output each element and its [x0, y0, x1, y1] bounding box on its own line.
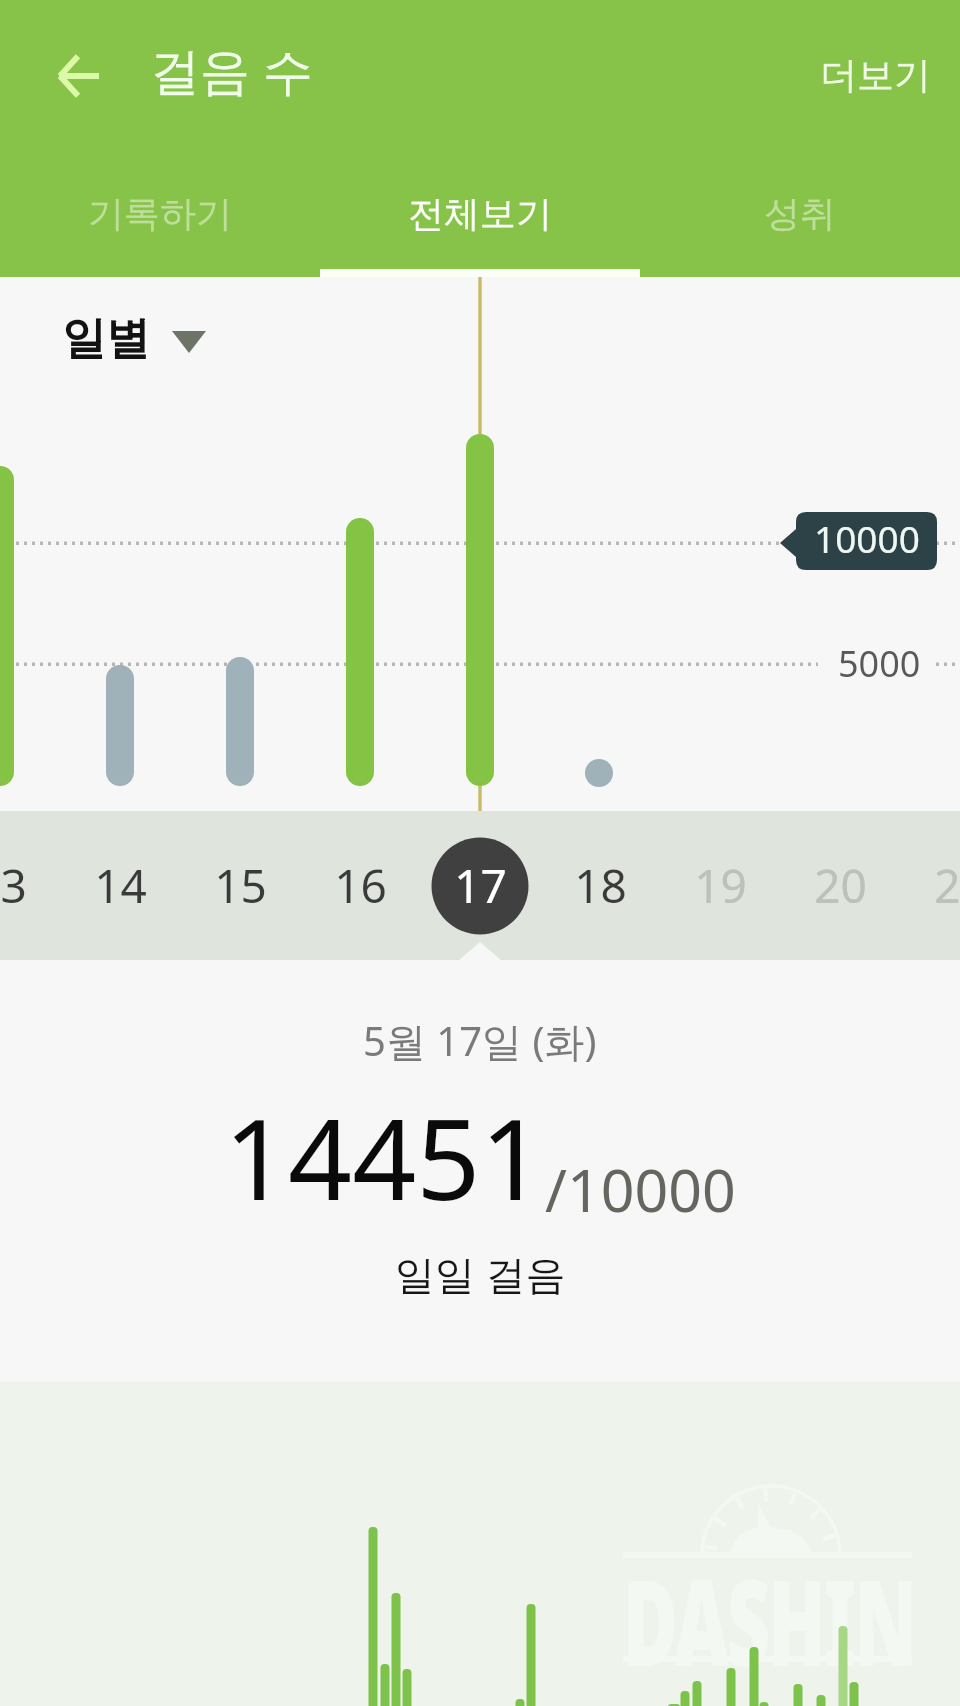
staticText: 15	[214, 854, 267, 917]
staticText: /10000	[545, 1149, 736, 1229]
staticText: 일별	[62, 311, 150, 366]
button[interactable]: 15	[185, 833, 295, 937]
staticText: 일일 걸음	[395, 1246, 566, 1301]
staticText: 걸음 수	[150, 36, 313, 104]
button[interactable]: 기록하기	[0, 165, 320, 277]
staticText: 19	[694, 854, 747, 917]
staticText: 더보기	[820, 52, 931, 99]
button[interactable]: 16	[305, 833, 415, 937]
button[interactable]: 전체보기	[320, 165, 640, 277]
staticText: 16	[334, 854, 387, 917]
staticText: 기록하기	[88, 191, 232, 236]
button[interactable]: Back	[32, 30, 124, 122]
button[interactable]: 18	[545, 833, 655, 937]
button[interactable]: 13	[0, 833, 55, 937]
staticText: 5000	[838, 639, 921, 688]
staticText: DASHIN	[623, 1540, 915, 1701]
button[interactable]: 19	[665, 833, 775, 937]
staticText: 20	[814, 854, 867, 917]
button[interactable]: 20	[785, 833, 895, 937]
button[interactable]: 더보기	[800, 20, 950, 130]
staticText: 성취	[764, 191, 836, 236]
button[interactable]: 17	[425, 833, 535, 937]
button[interactable]: 14	[65, 833, 175, 937]
button[interactable]: 일별	[62, 311, 206, 366]
staticText: 5월 17일 (화)	[363, 1013, 597, 1068]
staticText: 21	[934, 854, 960, 917]
staticText: 14451	[224, 1080, 545, 1233]
button[interactable]: 성취	[640, 165, 960, 277]
staticText: 전체보기	[408, 191, 552, 236]
staticText: 10000	[814, 513, 920, 563]
staticText: 13	[0, 854, 27, 917]
staticText: 18	[574, 854, 627, 917]
button[interactable]: 21	[905, 833, 960, 937]
staticText: 17	[454, 854, 507, 917]
staticText: 14	[94, 854, 147, 917]
